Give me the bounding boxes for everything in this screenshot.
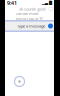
staticText: Type a message <box>17 23 45 29</box>
staticText: ok sounds good <box>19 6 45 12</box>
staticText: 9:41 <box>7 0 17 7</box>
button[interactable]: Record <box>14 76 25 87</box>
staticText: can we meet tomorrow at 3? <box>16 11 43 21</box>
staticText: ▂▄ █ <box>42 1 52 5</box>
